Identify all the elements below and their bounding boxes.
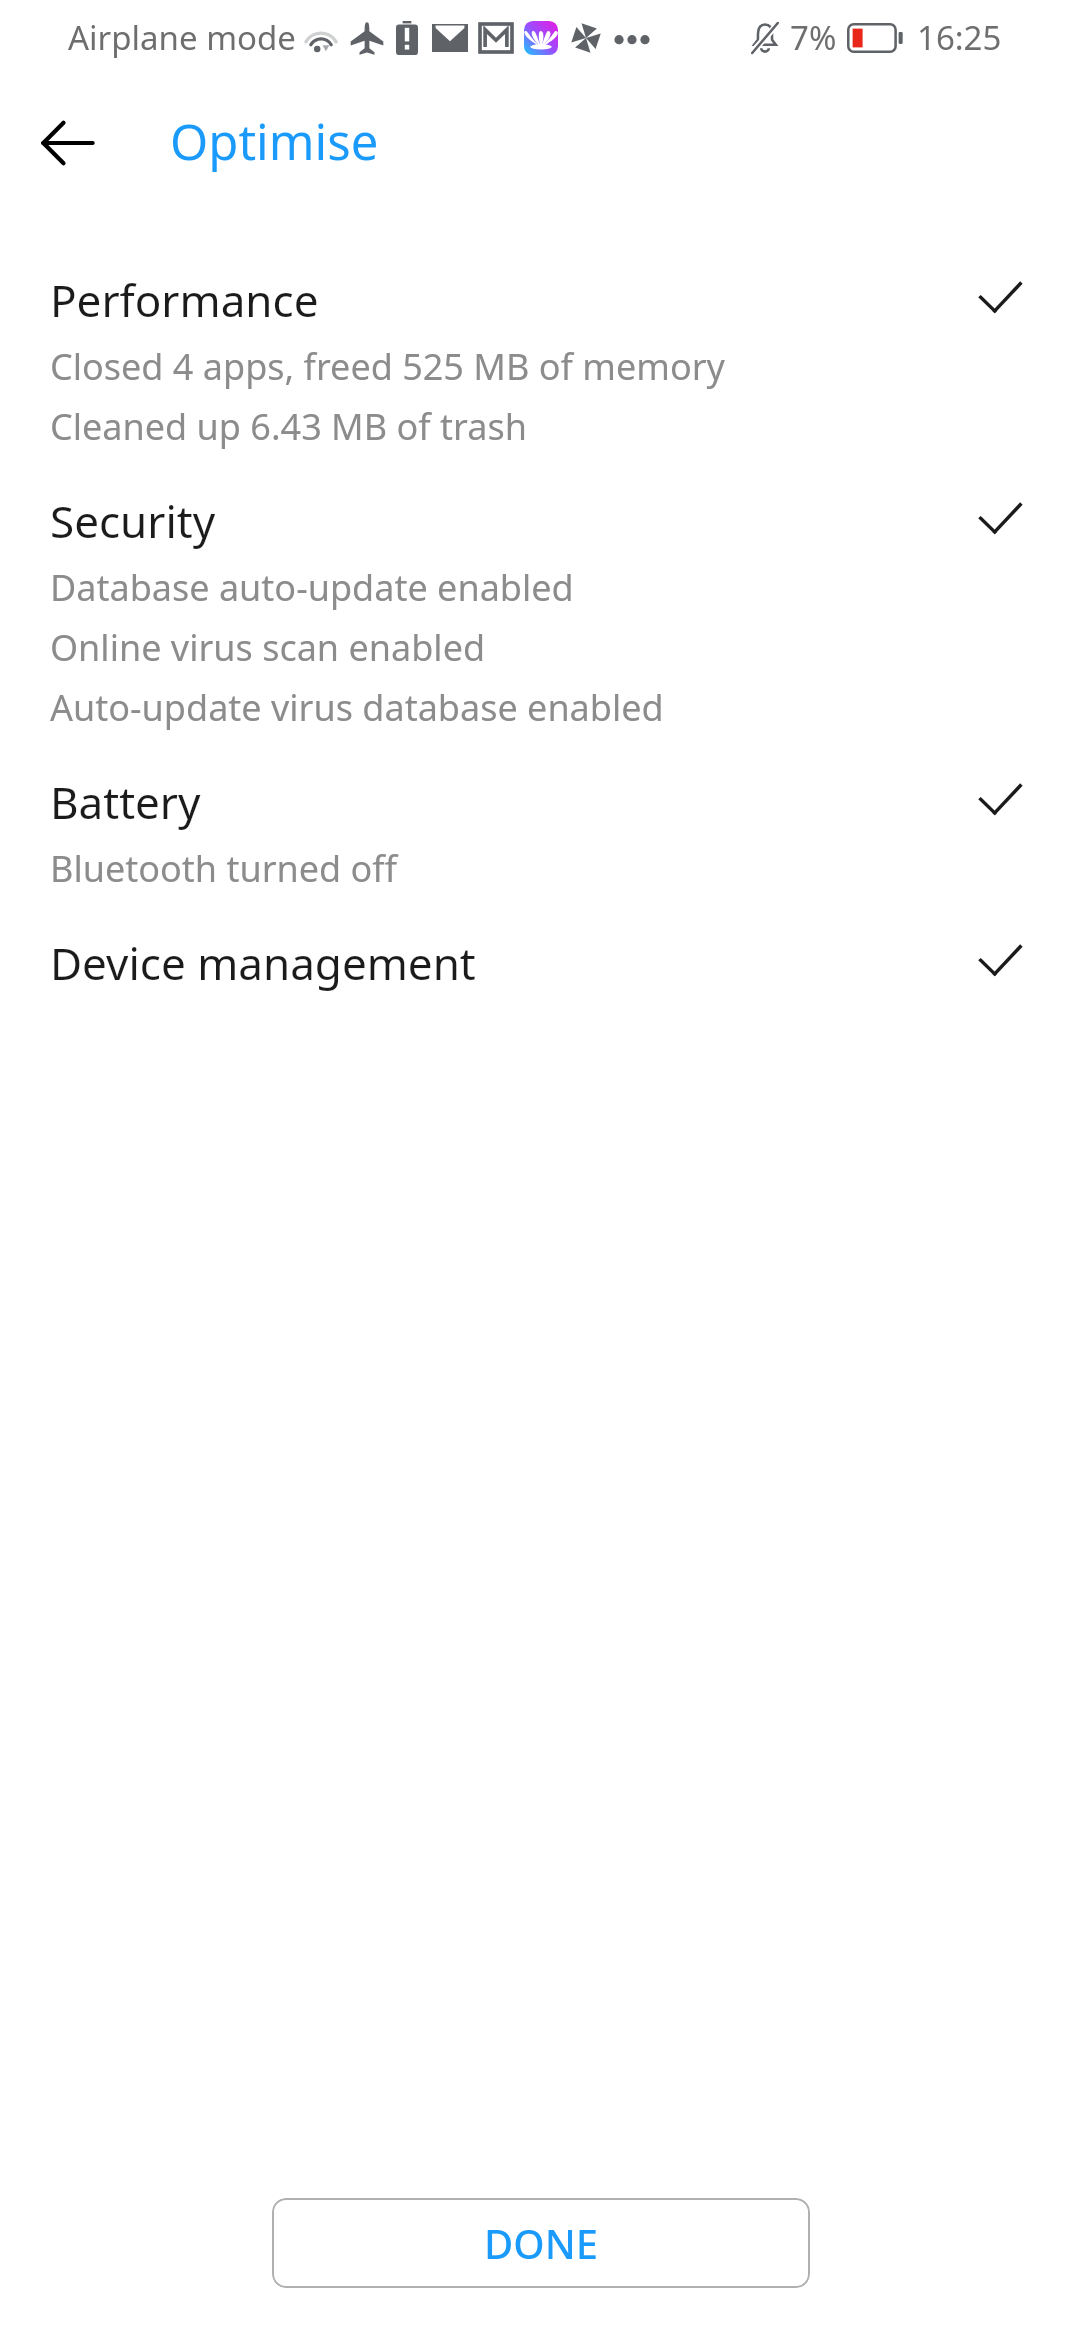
staticText: Bluetooth turned off [50, 844, 398, 893]
staticText: Closed 4 apps, freed 525 MB of memory [50, 342, 725, 391]
staticText: 16:25 [917, 15, 1002, 60]
button[interactable]: Back [26, 101, 110, 185]
staticText: 7% [790, 15, 837, 60]
staticText: Battery [50, 772, 201, 832]
staticText: Performance [50, 270, 319, 330]
button[interactable]: Device management [0, 915, 1080, 1015]
button[interactable]: Security [0, 473, 1080, 754]
staticText: Security [50, 491, 216, 551]
staticText: Airplane mode [68, 15, 296, 60]
button[interactable]: DONE [272, 2198, 810, 2288]
staticText: DONE [484, 2216, 598, 2270]
staticText: Auto-update virus database enabled [50, 683, 664, 732]
staticText: Cleaned up 6.43 MB of trash [50, 402, 527, 451]
staticText: Optimise [170, 108, 379, 175]
staticText: Online virus scan enabled [50, 623, 486, 672]
button[interactable]: Battery [0, 754, 1080, 915]
button[interactable]: Performance [0, 252, 1080, 473]
staticText: Device management [50, 933, 476, 993]
staticText: Database auto-update enabled [50, 563, 574, 612]
